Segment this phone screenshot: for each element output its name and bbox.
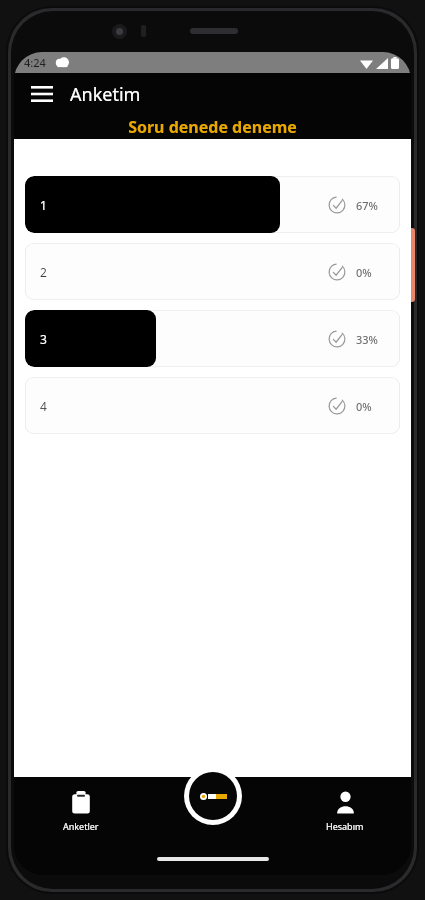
button[interactable]: 1 <box>25 176 400 233</box>
staticText: 0% <box>356 399 372 414</box>
staticText: Anketler <box>63 820 99 832</box>
staticText: 67% <box>356 198 378 213</box>
button[interactable]: 3 <box>25 310 400 367</box>
button[interactable]: Home <box>184 767 242 825</box>
staticText: 1 <box>40 197 47 213</box>
button[interactable]: Anketler <box>14 785 147 838</box>
staticText: 4:24 <box>24 55 46 70</box>
button[interactable]: 4 <box>25 377 400 434</box>
button[interactable]: Hesabım <box>279 785 411 838</box>
staticText: Anketim <box>70 82 141 107</box>
staticText: Soru denede deneme <box>128 116 297 138</box>
staticText: 4 <box>40 398 47 414</box>
staticText: 33% <box>356 332 378 347</box>
staticText: 2 <box>40 264 47 280</box>
staticText: 0% <box>356 265 372 280</box>
staticText: 3 <box>40 331 47 347</box>
button[interactable]: Menu <box>24 76 60 112</box>
staticText: Hesabım <box>326 820 364 832</box>
button[interactable]: 2 <box>25 243 400 300</box>
